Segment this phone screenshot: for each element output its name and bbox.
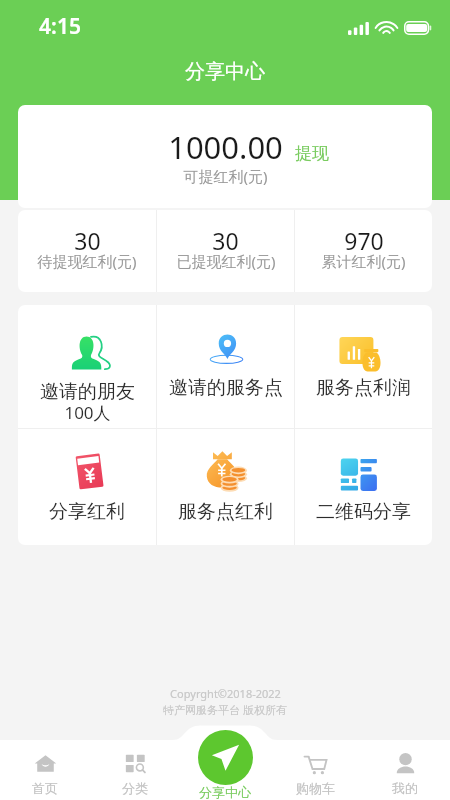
staticText: 特产网服务平台 版权所有 [163, 702, 287, 717]
staticText: 可提红利(元) [183, 166, 268, 186]
staticText: 邀请的服务点 [169, 376, 283, 400]
staticText: 待提现红利(元) [37, 251, 137, 271]
staticText: 100人 [64, 401, 111, 424]
staticText: 购物车 [296, 780, 335, 796]
staticText: 4:15 [39, 12, 81, 41]
staticText: 首页 [32, 780, 58, 796]
button[interactable]: 我的 [360, 722, 450, 800]
staticText: 累计红利(元) [321, 251, 406, 271]
staticText: 提现 [295, 143, 329, 164]
staticText: Copyrght©2018-2022 [170, 686, 281, 701]
button[interactable]: 970 [295, 210, 432, 292]
button[interactable]: 分享红利 [18, 429, 156, 545]
button[interactable]: 邀请的服务点 [157, 305, 294, 428]
button[interactable]: 30 [18, 210, 156, 292]
staticText: 970 [344, 225, 384, 256]
button[interactable]: 邀请的朋友 [18, 305, 156, 428]
button[interactable]: 30 [157, 210, 294, 292]
button[interactable]: 服务点利润 [295, 305, 432, 428]
button[interactable]: 分类 [90, 722, 180, 800]
staticText: 我的 [392, 780, 418, 796]
staticText: 30 [212, 225, 239, 256]
button[interactable]: 服务点红利 [157, 429, 294, 545]
button[interactable]: 二维码分享 [295, 429, 432, 545]
staticText: 分享红利 [49, 500, 125, 524]
button[interactable]: 分享中心 [198, 730, 253, 785]
staticText: 分享中心 [199, 784, 251, 800]
staticText: 服务点利润 [316, 376, 411, 400]
staticText: 分享中心 [185, 59, 265, 84]
staticText: 服务点红利 [178, 500, 273, 524]
staticText: 1000.00 [168, 126, 283, 168]
staticText: 30 [74, 225, 101, 256]
staticText: 已提现红利(元) [176, 251, 276, 271]
button[interactable]: 首页 [0, 722, 90, 800]
staticText: 邀请的朋友 [40, 380, 135, 404]
button[interactable]: 1000.00 [18, 105, 432, 208]
button[interactable]: 购物车 [270, 722, 360, 800]
staticText: 分类 [122, 780, 148, 796]
staticText: 二维码分享 [316, 500, 411, 524]
